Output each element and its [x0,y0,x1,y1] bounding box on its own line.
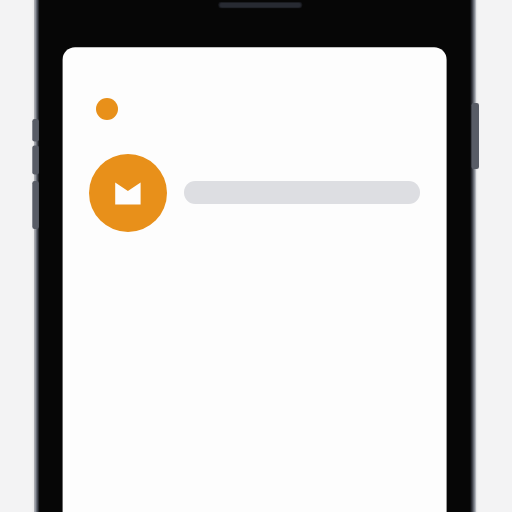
button[interactable]: Mail account avatar [89,154,167,232]
button[interactable]: Loading message title [184,181,420,204]
button[interactable]: Unread mail indicator [96,98,118,120]
